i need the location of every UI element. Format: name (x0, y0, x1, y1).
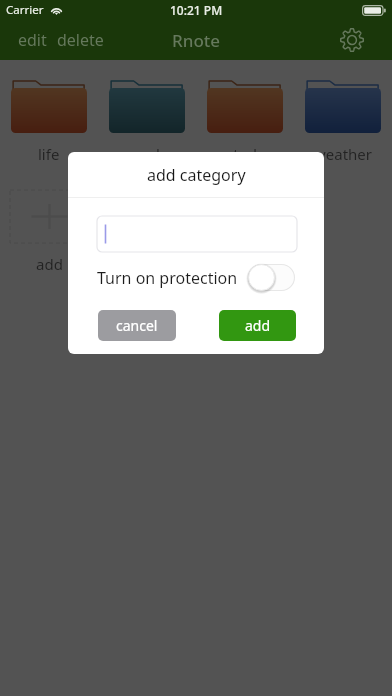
button[interactable]: add (0, 188, 98, 274)
staticText: study (226, 144, 265, 164)
staticText: delete (57, 29, 104, 51)
staticText: 10:21 PM (170, 2, 223, 18)
staticText: add category (147, 164, 246, 186)
staticText: edit (18, 29, 47, 51)
button[interactable] (248, 264, 295, 291)
button[interactable]: life (0, 78, 98, 164)
staticText: life (38, 144, 60, 164)
button[interactable]: cancel (98, 310, 176, 341)
button[interactable] (97, 216, 297, 252)
button[interactable]: Settings (334, 22, 370, 58)
button[interactable]: add (219, 310, 296, 341)
staticText: Carrier (6, 2, 44, 18)
button[interactable]: delete (57, 23, 104, 57)
button[interactable]: study (196, 78, 294, 164)
staticText: Turn on protection (97, 267, 238, 289)
staticText: work (129, 144, 165, 164)
staticText: Rnote (172, 29, 221, 52)
button[interactable]: work (98, 78, 196, 164)
staticText: weather (314, 144, 373, 164)
staticText: add (245, 316, 271, 335)
staticText: add (36, 254, 63, 274)
staticText: cancel (116, 316, 158, 335)
button[interactable]: weather (294, 78, 392, 164)
button[interactable]: edit (18, 23, 47, 57)
